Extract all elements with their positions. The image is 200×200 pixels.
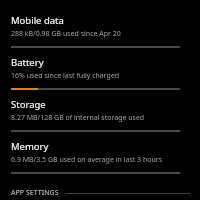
staticText: Mobile data	[11, 14, 64, 27]
button[interactable]: Battery	[0, 48, 200, 90]
button[interactable]: Storage	[0, 90, 200, 132]
other: App settings section	[0, 186, 200, 200]
staticText: Storage	[11, 98, 46, 111]
staticText: Battery	[11, 56, 44, 69]
staticText: 6.9 MB/3.5 GB used on average in last 3 …	[11, 155, 163, 165]
staticText: 16% used since last fully charged	[11, 71, 120, 81]
button[interactable]: Memory	[0, 132, 200, 174]
staticText: Memory	[11, 140, 49, 153]
staticText: 288 kB/0.98 GB used since Apr 20	[11, 29, 121, 39]
button[interactable]: Mobile data	[0, 6, 200, 48]
staticText: APP SETTINGS	[11, 188, 59, 198]
staticText: 8.27 MB/128 GB of internal storage used	[11, 113, 145, 123]
